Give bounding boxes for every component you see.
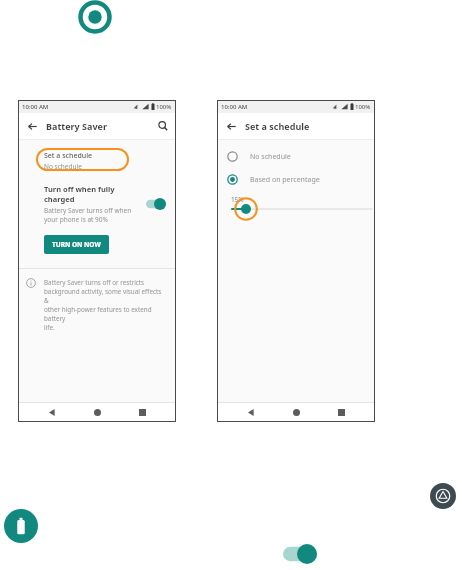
button[interactable]: Toggle — [146, 198, 166, 210]
staticText: 10:00 AM — [221, 103, 248, 111]
staticText: background activity, some visual effects… — [44, 287, 166, 305]
staticText: TURN ON NOW — [52, 240, 101, 249]
button[interactable]: Option — [227, 151, 238, 162]
staticText: Turn off when fully charged — [44, 184, 142, 204]
staticText: Battery Saver — [46, 120, 107, 132]
button[interactable]: TURN ON NOW — [44, 235, 109, 254]
staticText: 15% — [231, 195, 244, 204]
staticText: your phone is at 90% — [44, 215, 108, 224]
button[interactable]: Recents — [330, 403, 352, 422]
button[interactable]: Battery percentage slider — [231, 208, 373, 210]
staticText: No schedule — [250, 152, 291, 162]
staticText: 100% — [355, 103, 371, 111]
button[interactable]: Selected option — [217, 171, 375, 188]
button[interactable]: Set a schedule — [18, 147, 176, 172]
staticText: life. — [44, 323, 55, 332]
button[interactable]: Home — [86, 403, 108, 422]
staticText: 10:00 AM — [22, 103, 49, 111]
staticText: Based on percentage — [250, 175, 320, 185]
staticText: Set a schedule — [44, 151, 93, 161]
staticText: No schedule — [44, 162, 82, 171]
button[interactable]: Home — [285, 403, 307, 422]
staticText: other high-power features to extend batt… — [44, 305, 166, 323]
staticText: 100% — [156, 103, 172, 111]
button[interactable]: Back — [41, 403, 63, 422]
button[interactable]: Search — [150, 113, 176, 139]
staticText: Battery Saver turns off when — [44, 206, 132, 215]
button[interactable]: Turn off when fully charged — [18, 182, 176, 226]
button[interactable]: Back — [240, 403, 262, 422]
staticText: Set a schedule — [245, 120, 310, 132]
button[interactable]: Back — [18, 113, 46, 139]
button[interactable]: Back — [217, 113, 245, 139]
button[interactable]: Recents — [131, 403, 153, 422]
button[interactable]: Option — [217, 148, 375, 165]
staticText: Battery Saver turns off or restricts — [44, 278, 145, 287]
button[interactable]: Selected option — [227, 174, 238, 185]
